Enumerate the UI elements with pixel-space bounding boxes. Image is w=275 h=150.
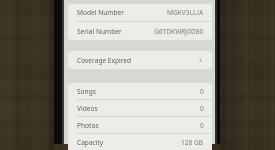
button[interactable]: Serial Number: [68, 22, 212, 40]
button[interactable]: Capacity: [68, 134, 212, 150]
staticText: Songs: [77, 87, 96, 96]
staticText: MGKV3LL/A: [167, 8, 204, 17]
button[interactable]: Photos: [68, 117, 212, 133]
other: Open coverage details: [197, 57, 204, 64]
staticText: 0: [200, 87, 204, 96]
button[interactable]: Videos: [68, 100, 212, 116]
button[interactable]: Coverage Expired: [68, 51, 212, 69]
staticText: 128 GB: [181, 138, 204, 147]
button[interactable]: Songs: [68, 83, 212, 99]
staticText: 0: [200, 104, 204, 113]
button[interactable]: Model Number: [68, 4, 212, 21]
staticText: G6TDKWRJ0D80: [154, 27, 204, 36]
staticText: Model Number: [77, 8, 124, 17]
staticText: Photos: [77, 121, 99, 130]
staticText: Coverage Expired: [77, 56, 132, 65]
staticText: Serial Number: [77, 27, 122, 36]
staticText: Capacity: [77, 138, 104, 147]
staticText: Videos: [77, 104, 98, 113]
staticText: 0: [200, 121, 204, 130]
